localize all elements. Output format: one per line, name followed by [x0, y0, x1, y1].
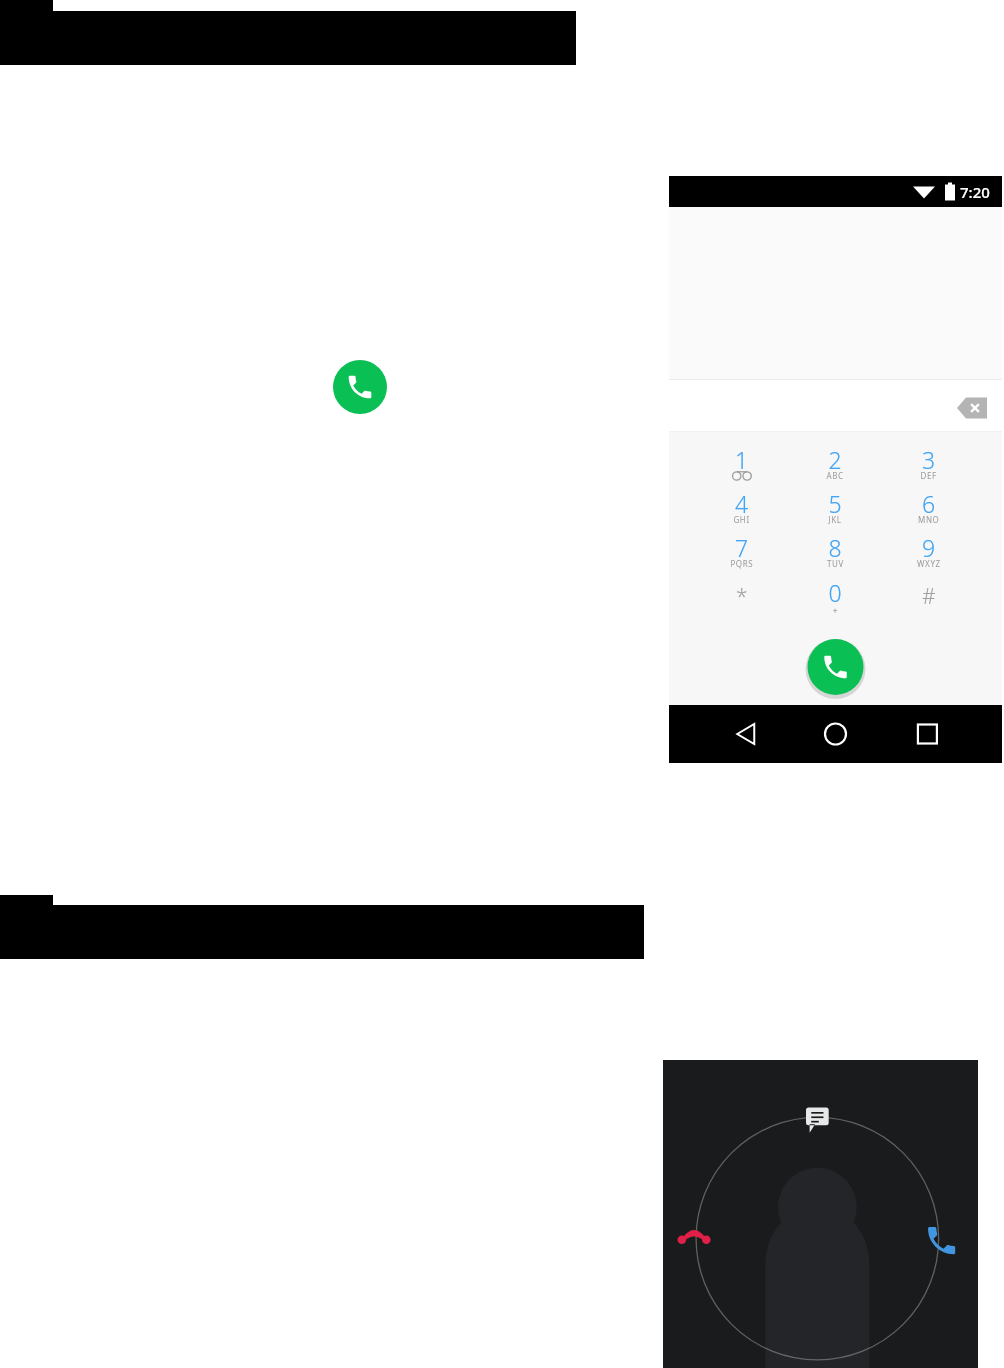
- button[interactable]: Call: [333, 360, 387, 414]
- button[interactable]: Backspace: [957, 384, 997, 424]
- button[interactable]: Call: [807, 640, 863, 696]
- button[interactable]: Reply with message: [793, 1076, 839, 1122]
- button[interactable]: Decline call: [681, 1198, 731, 1248]
- button[interactable]: Answer call: [913, 1198, 963, 1248]
